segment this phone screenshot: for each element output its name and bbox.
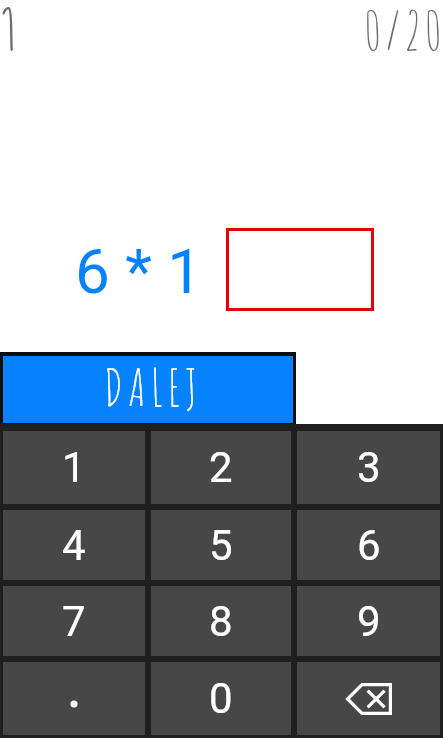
button[interactable]: Backspace [297, 662, 440, 735]
button[interactable]: Decimal point [3, 662, 145, 735]
staticText: 0/20 [364, 0, 443, 63]
staticText: 6 * 1 [75, 235, 203, 308]
button[interactable]: 9 [297, 586, 440, 656]
button[interactable]: 2 [151, 431, 291, 504]
staticText: 9 [357, 597, 381, 646]
button[interactable]: Level 1 [0, 0, 26, 60]
button[interactable]: 0/20 [364, 0, 443, 63]
staticText: 7 [62, 597, 86, 646]
other: Decimal point [62, 683, 86, 714]
staticText: 2 [209, 443, 233, 492]
button[interactable]: 7 [3, 586, 145, 656]
button[interactable]: 8 [151, 586, 291, 656]
button[interactable]: 4 [3, 510, 145, 580]
staticText: 3 [357, 443, 381, 492]
button[interactable]: Answer input [226, 228, 374, 311]
button[interactable]: DALEJ [3, 356, 293, 423]
button[interactable]: 3 [297, 431, 440, 504]
staticText: 8 [209, 597, 233, 646]
staticText: 4 [62, 521, 86, 570]
staticText: DALEJ [104, 355, 203, 418]
button[interactable]: 1 [3, 431, 145, 504]
staticText: 0 [209, 674, 233, 723]
staticText: 6 [357, 521, 381, 570]
button[interactable]: 5 [151, 510, 291, 580]
button[interactable]: 0 [151, 662, 291, 735]
staticText: 5 [209, 521, 233, 570]
button[interactable]: 6 [297, 510, 440, 580]
staticText: 1 [62, 443, 86, 492]
other: Backspace [346, 683, 392, 715]
